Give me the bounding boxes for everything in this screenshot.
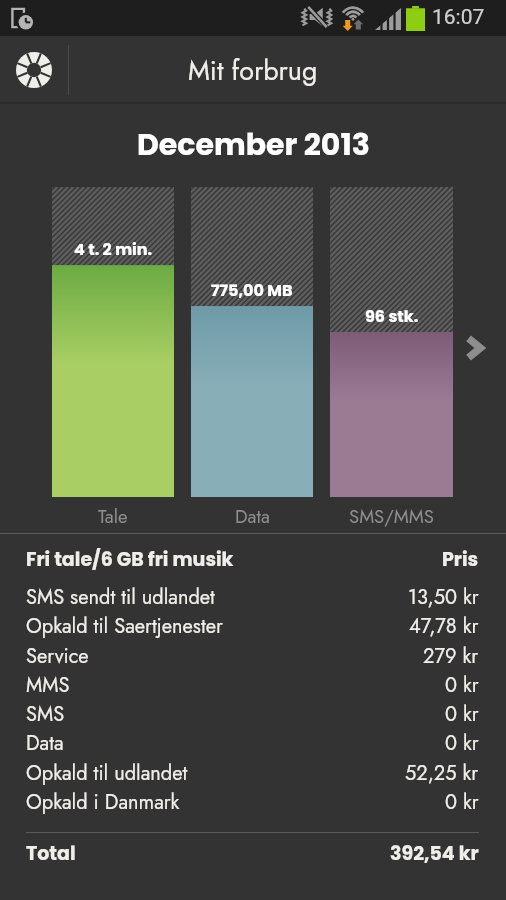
staticText: 52,25 kr [405,759,479,786]
staticText: 279 kr [423,642,479,669]
button[interactable]: SMS [26,700,479,727]
staticText: 16:07 [432,5,485,30]
button[interactable]: Open navigation menu [0,36,68,104]
staticText: December 2013 [137,124,370,166]
button[interactable]: Opkald til udlandet [26,759,479,786]
staticText: Data [26,729,64,756]
staticText: Mit forbrug [188,51,318,90]
staticText: Tale [98,503,128,530]
button[interactable]: Data [26,729,479,756]
staticText: Opkald til Saertjenester [26,612,223,639]
staticText: 0 kr [445,729,479,756]
staticText: 4 t. 2 min. [74,238,153,260]
staticText: 96 stk. [365,305,419,327]
button[interactable]: Fri tale/6 GB fri musik [26,546,479,573]
button[interactable]: Opkald i Danmark [26,788,479,815]
staticText: SMS/MMS [349,503,434,530]
staticText: 775,00 MB [211,279,293,301]
staticText: SMS [26,700,65,727]
button[interactable]: Total [26,840,479,867]
button[interactable]: Opkald til Saertjenester [26,612,479,639]
staticText: Opkald i Danmark [26,788,180,815]
staticText: Opkald til udlandet [26,759,188,786]
button[interactable]: Service [26,642,479,669]
staticText: Total [26,840,76,867]
staticText: 392,54 kr [390,840,479,867]
staticText: Data [235,503,270,530]
staticText: 47,78 kr [409,612,479,639]
button[interactable]: MMS [26,671,479,698]
staticText: SMS sendt til udlandet [26,583,215,610]
staticText: Fri tale/6 GB fri musik [26,546,234,573]
button[interactable]: SMS sendt til udlandet [26,583,479,610]
staticText: 13,50 kr [408,583,479,610]
staticText: Service [26,642,89,669]
staticText: 0 kr [445,700,479,727]
staticText: MMS [26,671,70,698]
button[interactable]: Next month [458,332,490,364]
staticText: Pris [442,546,479,573]
staticText: 0 kr [445,788,479,815]
staticText: 0 kr [445,671,479,698]
